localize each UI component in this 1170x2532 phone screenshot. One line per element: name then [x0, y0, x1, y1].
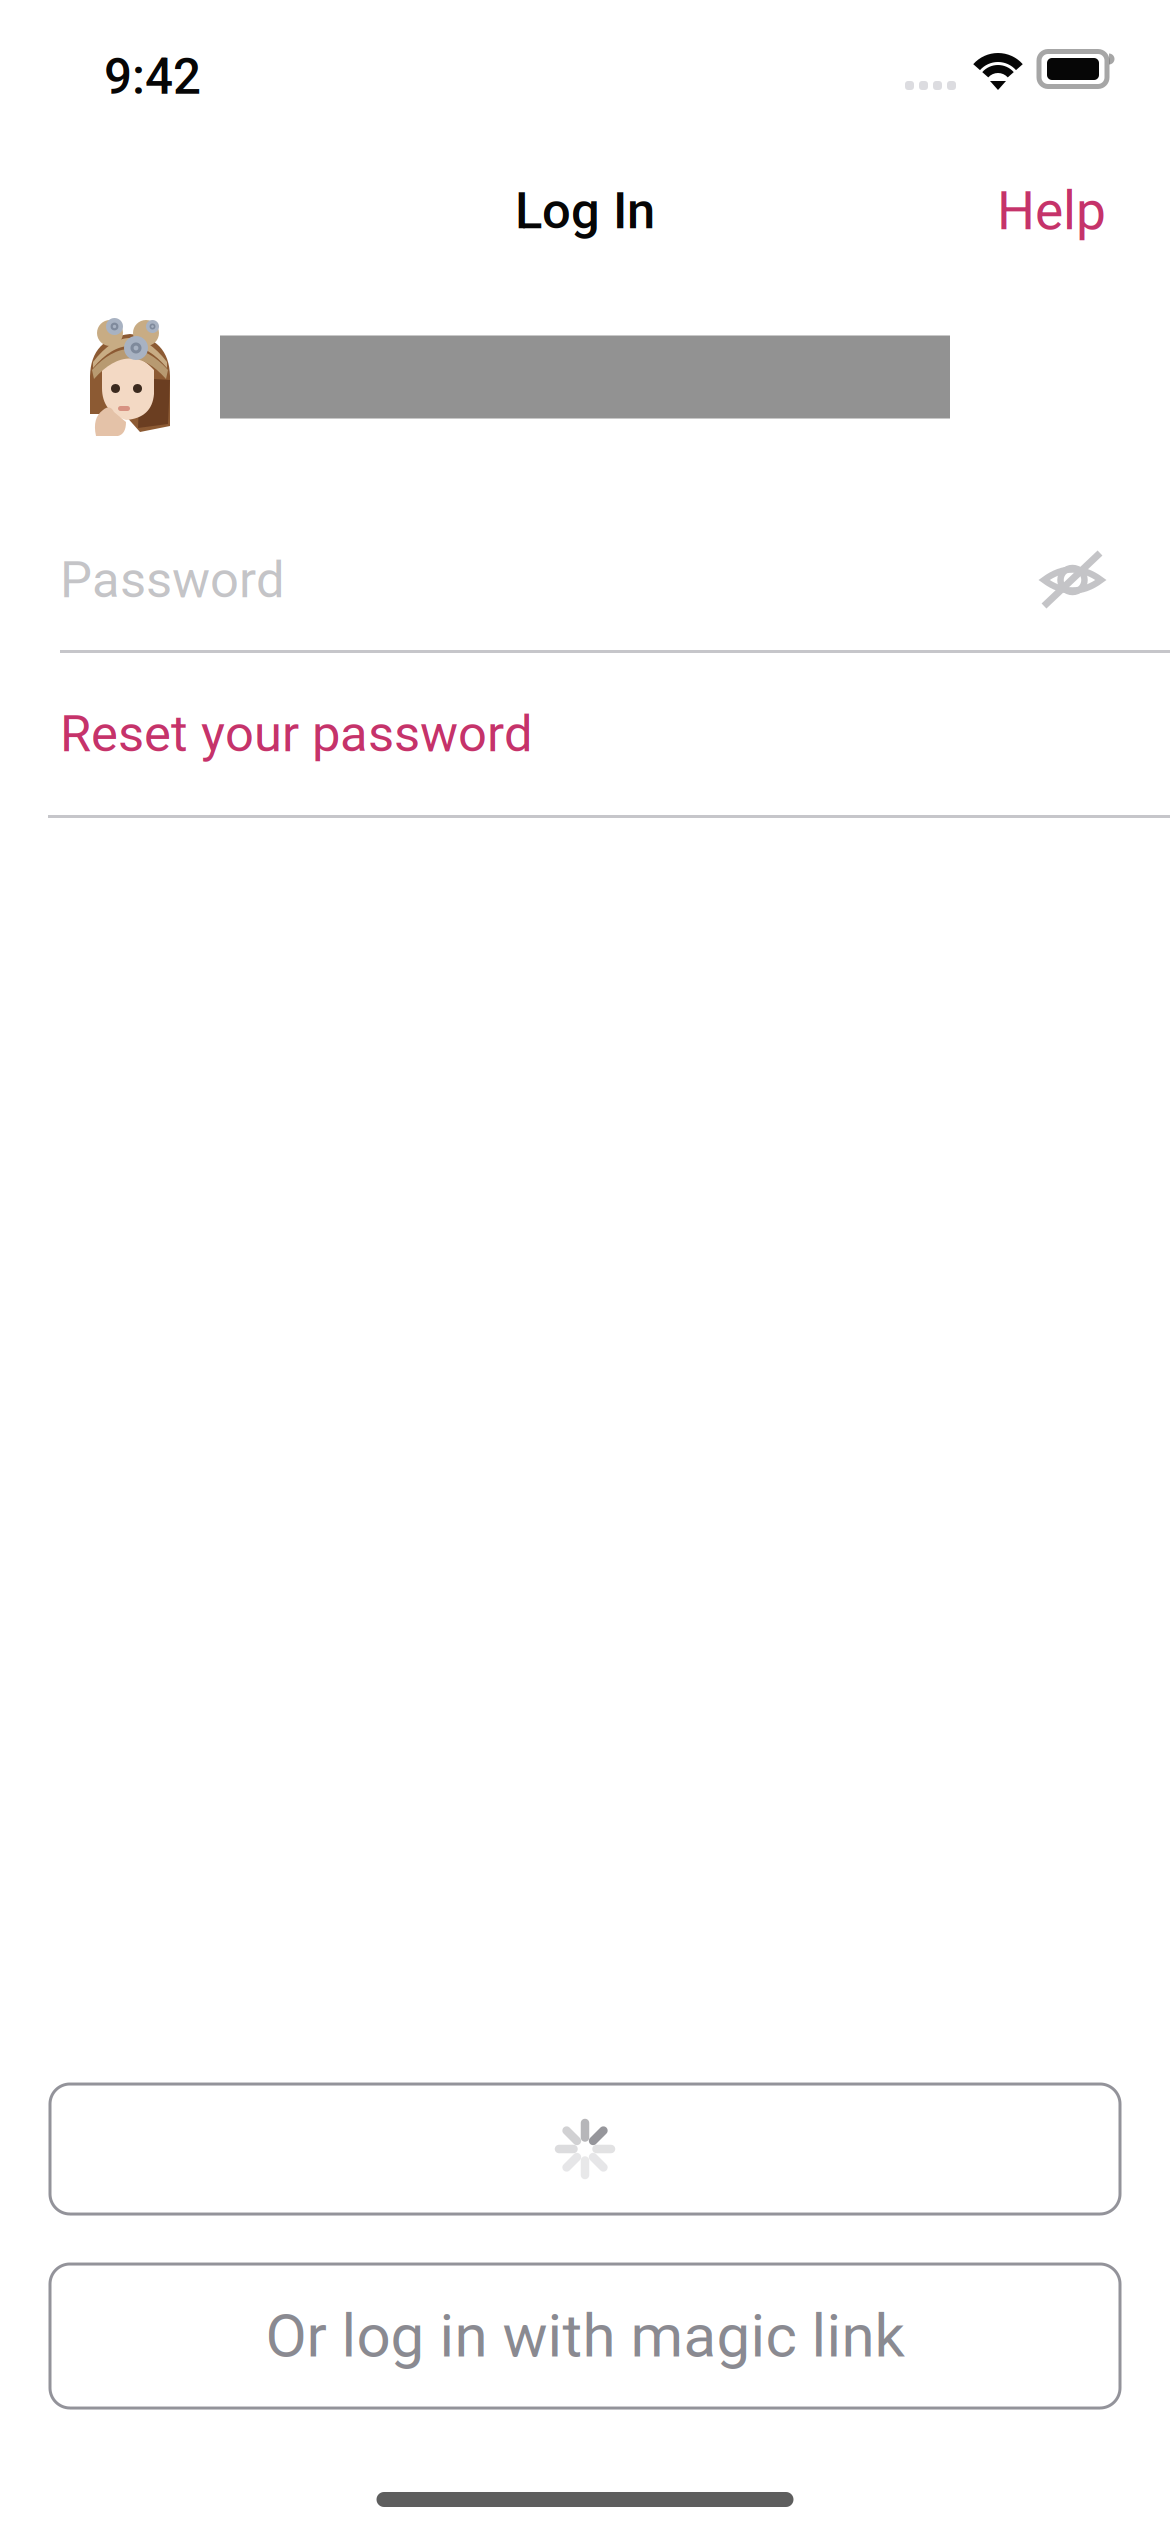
staticText: Or log in with magic link — [265, 2301, 904, 2371]
button[interactable]: Show password — [1031, 549, 1114, 611]
button[interactable]: Reset your password — [0, 653, 1170, 815]
button[interactable]: Log in, loading — [50, 2084, 1120, 2214]
button[interactable]: Or log in with magic link — [50, 2264, 1120, 2408]
staticText: Log In — [515, 181, 655, 241]
staticText: Reset your password — [60, 704, 533, 764]
staticText: 9:42 — [104, 48, 201, 106]
staticText: Password — [60, 550, 285, 610]
button[interactable]: Help — [977, 163, 1126, 259]
staticText: Help — [997, 180, 1106, 242]
